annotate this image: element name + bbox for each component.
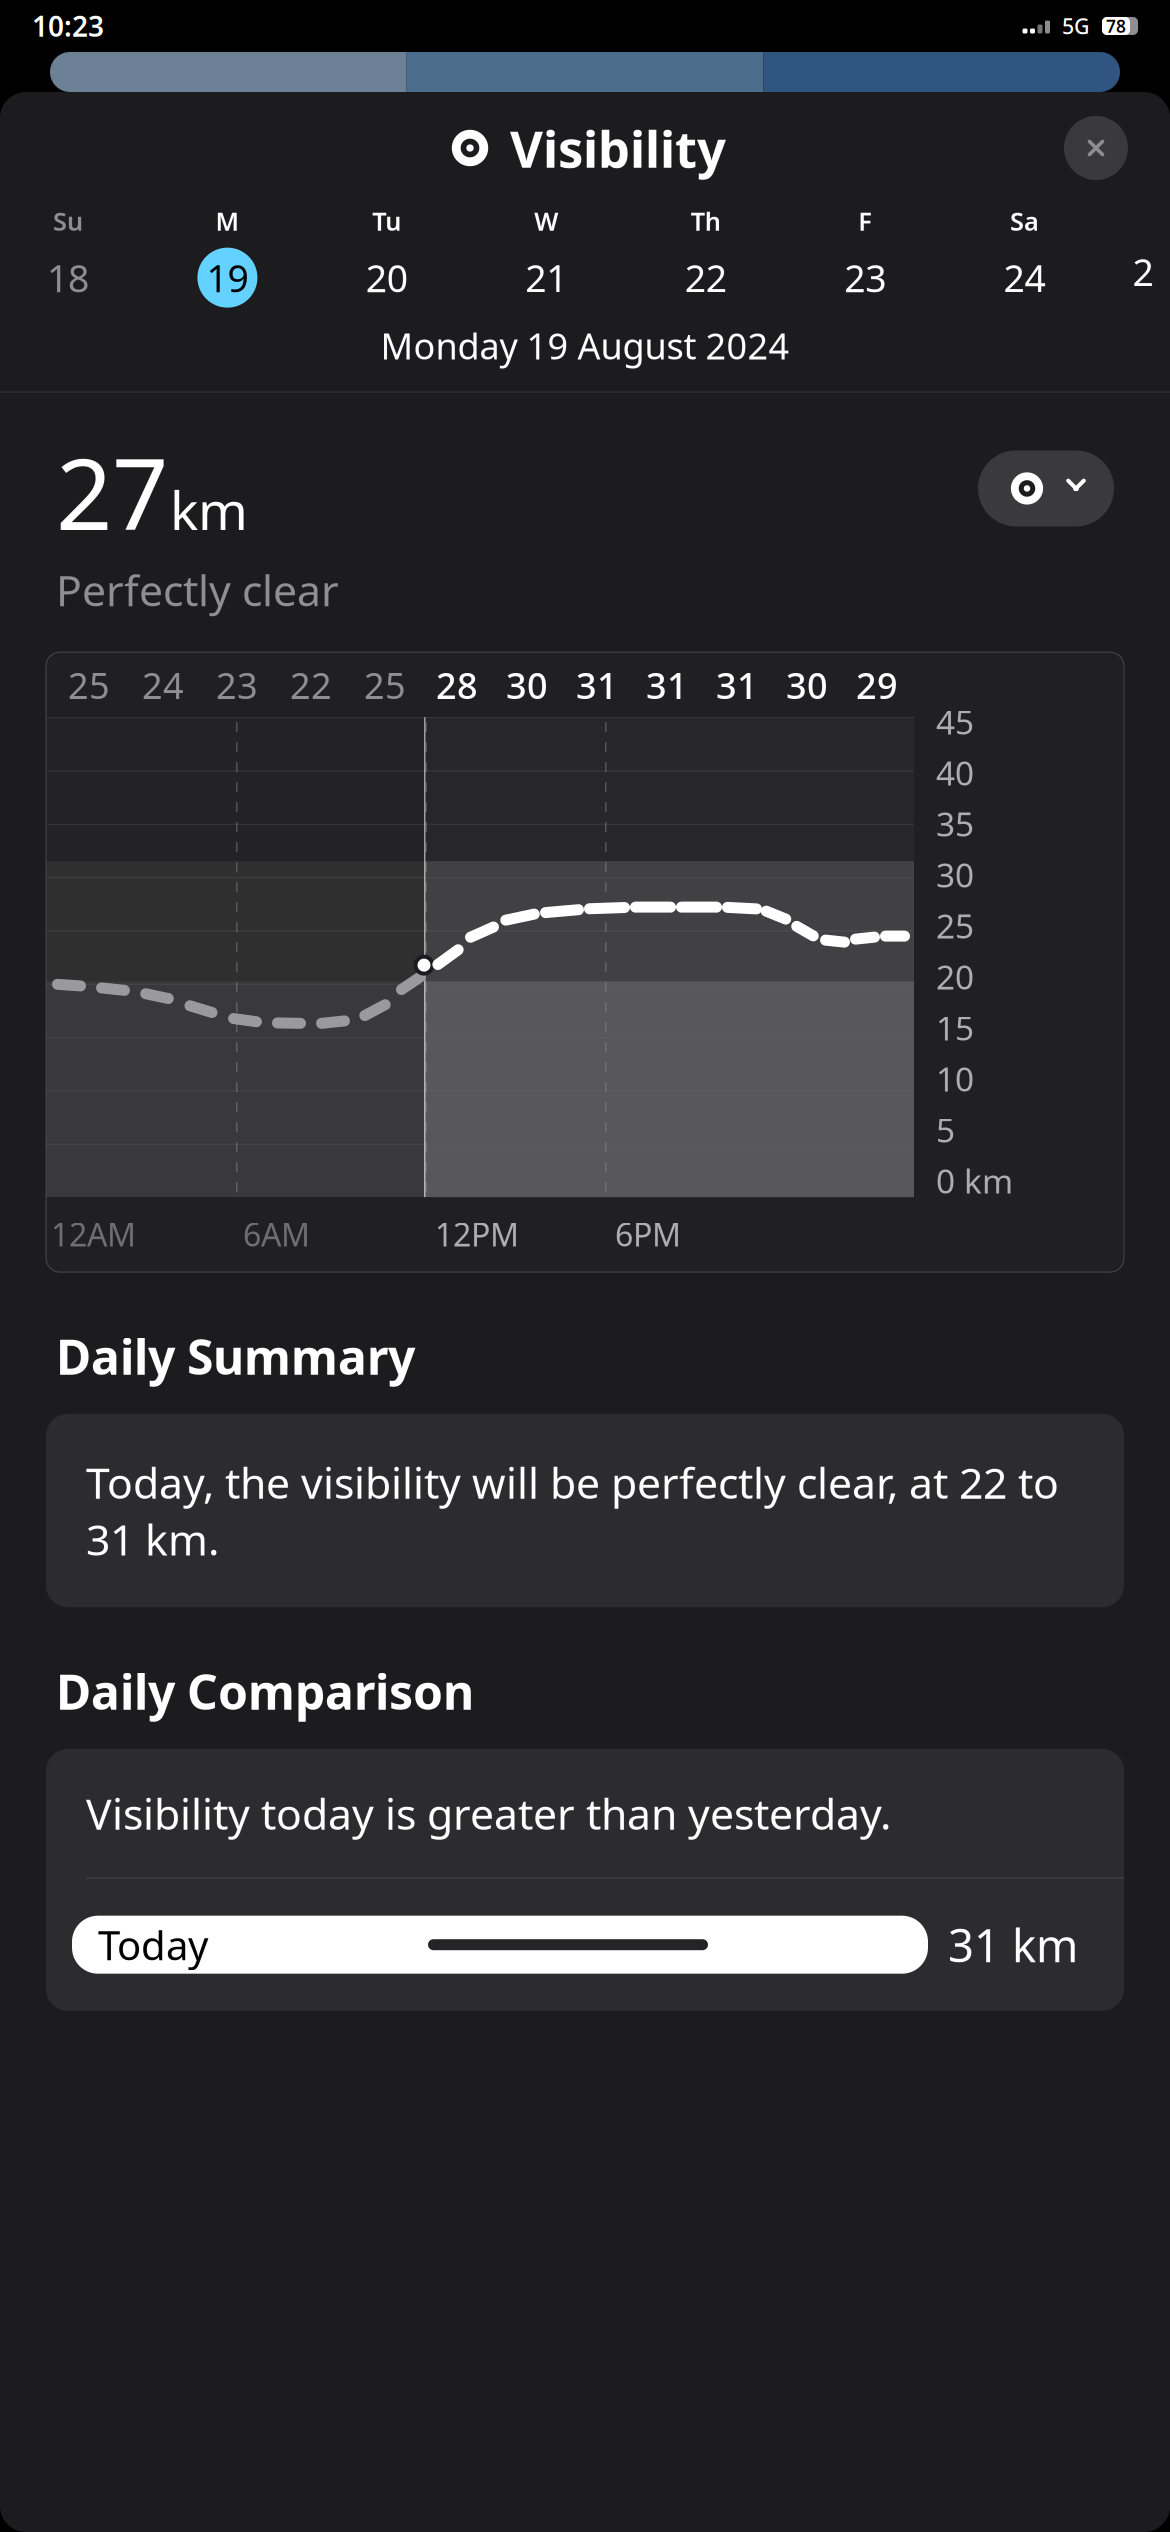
- staticText: Th: [691, 204, 721, 238]
- staticText: 45: [936, 699, 974, 744]
- staticText: 5G: [1062, 12, 1090, 40]
- staticText: Monday 19 August 2024: [380, 322, 789, 369]
- staticText: 28: [436, 661, 478, 709]
- staticText: 40: [936, 750, 974, 795]
- staticText: 10:23: [32, 7, 104, 45]
- button[interactable]: M: [179, 204, 275, 308]
- button[interactable]: Close: [1064, 116, 1128, 180]
- staticText: 19: [206, 253, 248, 302]
- staticText: Daily Comparison: [56, 1659, 474, 1723]
- staticText: km: [170, 474, 248, 545]
- staticText: Today, the visibility will be perfectly …: [86, 1454, 1059, 1567]
- staticText: 20: [936, 954, 974, 999]
- staticText: 10: [936, 1056, 974, 1101]
- staticText: 24: [142, 661, 184, 709]
- staticText: 22: [290, 661, 332, 709]
- staticText: Visibility today is greater than yesterd…: [86, 1785, 891, 1842]
- staticText: Su: [53, 204, 83, 238]
- staticText: 78: [1106, 14, 1126, 37]
- staticText: 12AM: [51, 1213, 136, 1255]
- staticText: Perfectly clear: [56, 561, 339, 618]
- button[interactable]: Change metric: [978, 450, 1114, 526]
- staticText: Tu: [372, 204, 401, 238]
- button[interactable]: Sa: [977, 204, 1073, 308]
- button[interactable]: Su: [20, 204, 116, 308]
- staticText: 24: [1004, 253, 1046, 302]
- staticText: 5: [936, 1107, 955, 1152]
- staticText: 22: [685, 253, 727, 302]
- button[interactable]: W: [498, 204, 594, 308]
- staticText: 31: [716, 661, 758, 709]
- staticText: 29: [856, 661, 898, 709]
- staticText: Daily Summary: [56, 1324, 415, 1388]
- staticText: 6AM: [243, 1213, 310, 1255]
- staticText: M: [215, 204, 239, 238]
- staticText: W: [534, 204, 558, 238]
- staticText: 30: [936, 852, 974, 897]
- staticText: 25: [68, 661, 110, 709]
- staticText: 23: [216, 661, 258, 709]
- staticText: 6PM: [615, 1213, 681, 1255]
- staticText: 25: [936, 903, 974, 948]
- staticText: Visibility: [510, 114, 726, 182]
- staticText: 30: [786, 661, 828, 709]
- staticText: Sa: [1010, 204, 1039, 238]
- staticText: 25: [364, 661, 406, 709]
- button[interactable]: F: [817, 204, 913, 308]
- staticText: Today: [98, 1918, 208, 1971]
- staticText: 31 km: [948, 1915, 1078, 1975]
- staticText: 0 km: [936, 1158, 1013, 1203]
- staticText: 30: [506, 661, 548, 709]
- staticText: 12PM: [435, 1213, 519, 1255]
- staticText: 27: [56, 426, 168, 557]
- staticText: 20: [366, 253, 408, 302]
- staticText: F: [858, 204, 872, 238]
- staticText: 23: [844, 253, 886, 302]
- staticText: 18: [47, 253, 89, 302]
- staticText: 15: [936, 1005, 974, 1050]
- staticText: 31: [576, 661, 618, 709]
- button[interactable]: Tu: [339, 204, 435, 308]
- staticText: 35: [936, 801, 974, 846]
- staticText: 21: [525, 253, 567, 302]
- staticText: 31: [646, 661, 688, 709]
- button[interactable]: Th: [658, 204, 754, 308]
- staticText: 2: [1132, 247, 1153, 297]
